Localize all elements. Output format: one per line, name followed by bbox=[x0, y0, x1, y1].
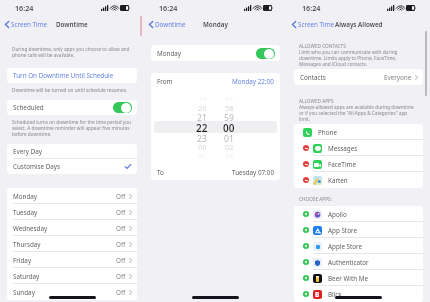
staticText: Off bbox=[116, 240, 126, 249]
staticText: 21 bbox=[197, 112, 207, 121]
staticText: 16:24 bbox=[159, 3, 178, 13]
staticText: Off bbox=[116, 288, 126, 297]
staticText: 16:24 bbox=[15, 3, 34, 13]
button[interactable]: Customise Days bbox=[7, 159, 137, 174]
staticText: 57 bbox=[226, 95, 233, 103]
staticText: Monday bbox=[13, 192, 38, 201]
button[interactable]: Downtime bbox=[149, 20, 186, 29]
staticText: App Store bbox=[328, 226, 357, 235]
staticText: 58 bbox=[225, 103, 234, 112]
staticText: 16:24 bbox=[302, 3, 321, 13]
staticText: 22 bbox=[196, 121, 208, 133]
staticText: Scheduled bbox=[13, 103, 44, 112]
staticText: Authenticator bbox=[328, 258, 369, 267]
staticText: Apple Store bbox=[328, 242, 363, 251]
staticText: Everyone bbox=[384, 73, 412, 82]
button[interactable]: Apple Store bbox=[294, 238, 423, 254]
button[interactable]: From bbox=[151, 73, 280, 89]
button[interactable]: Turn On Downtime Until Schedule bbox=[7, 68, 137, 83]
staticText: Messages bbox=[328, 144, 358, 153]
staticText: 23 bbox=[197, 133, 207, 142]
staticText: Sunday bbox=[13, 288, 35, 297]
staticText: Downtime will be turned on until schedul… bbox=[12, 87, 128, 93]
staticText: Tuesday bbox=[13, 208, 38, 217]
button[interactable]: Thursday bbox=[7, 236, 137, 252]
button[interactable]: To bbox=[151, 164, 280, 180]
button[interactable]: Monday bbox=[151, 45, 280, 61]
staticText: Off bbox=[116, 208, 126, 217]
staticText: Karten bbox=[328, 176, 348, 185]
button[interactable]: Authenticator bbox=[294, 254, 423, 270]
staticText: 20 bbox=[198, 103, 207, 112]
staticText: Beer With Me bbox=[328, 274, 368, 283]
button[interactable]: Toggle bbox=[113, 102, 132, 113]
staticText: FaceTime bbox=[328, 160, 356, 169]
staticText: Off bbox=[116, 256, 126, 265]
button[interactable]: Phone bbox=[294, 124, 423, 140]
staticText: Downtime bbox=[155, 20, 186, 29]
staticText: Phone bbox=[318, 128, 337, 137]
staticText: 19 bbox=[199, 95, 206, 103]
staticText: Saturday bbox=[13, 272, 40, 281]
staticText: Screen Time bbox=[11, 20, 48, 29]
staticText: Scheduled turns on downtime for the time… bbox=[12, 119, 132, 137]
button[interactable]: Toggle bbox=[256, 48, 275, 59]
staticText: Always Allowed bbox=[335, 20, 383, 29]
button[interactable]: Screen Time bbox=[292, 20, 335, 29]
button[interactable]: Apollo bbox=[294, 206, 423, 222]
staticText: CHOOSE APPS: bbox=[299, 196, 332, 202]
staticText: Monday bbox=[203, 20, 228, 29]
button[interactable]: Screen Time bbox=[5, 20, 48, 29]
button[interactable]: Saturday bbox=[7, 268, 137, 284]
button[interactable]: Every Day bbox=[7, 144, 137, 159]
button[interactable]: Beer With Me bbox=[294, 270, 423, 286]
staticText: ALLOWED APPS Always-allowed apps are ava… bbox=[299, 98, 414, 122]
staticText: 01 bbox=[224, 133, 234, 142]
button[interactable]: Friday bbox=[7, 252, 137, 268]
staticText: 03 bbox=[226, 152, 233, 160]
staticText: Tuesday 07:00 bbox=[232, 168, 274, 177]
staticText: 02 bbox=[225, 142, 234, 151]
staticText: Off bbox=[116, 192, 126, 201]
button[interactable]: Messages bbox=[294, 140, 423, 156]
staticText: Thursday bbox=[13, 240, 41, 249]
staticText: 00 bbox=[198, 142, 207, 151]
button[interactable]: Monday bbox=[7, 188, 137, 204]
button[interactable]: Sunday bbox=[7, 284, 137, 300]
staticText: ALLOWED CONTACTS Limit who you can commu… bbox=[299, 43, 398, 67]
staticText: Contacts bbox=[300, 73, 326, 82]
staticText: 01 bbox=[199, 152, 206, 160]
staticText: Friday bbox=[13, 256, 32, 265]
staticText: Apollo bbox=[328, 210, 347, 219]
button[interactable]: Karten bbox=[294, 172, 423, 188]
staticText: From bbox=[157, 77, 173, 86]
staticText: Downtime bbox=[56, 20, 88, 29]
button[interactable]: FaceTime bbox=[294, 156, 423, 172]
staticText: Customise Days bbox=[13, 162, 61, 171]
staticText: 59 bbox=[224, 112, 234, 121]
button[interactable]: Scheduled bbox=[7, 100, 137, 115]
staticText: During downtime, only apps you choose to… bbox=[12, 46, 130, 58]
button[interactable]: Contacts bbox=[294, 69, 423, 85]
staticText: 00 bbox=[223, 121, 235, 133]
staticText: To bbox=[157, 168, 164, 177]
staticText: Off bbox=[116, 272, 126, 281]
staticText: Off bbox=[116, 224, 126, 233]
button[interactable]: Wednesday bbox=[7, 220, 137, 236]
button[interactable]: App Store bbox=[294, 222, 423, 238]
staticText: Wednesday bbox=[13, 224, 48, 233]
staticText: Screen Time bbox=[298, 20, 335, 29]
staticText: Turn On Downtime Until Schedule bbox=[13, 71, 114, 80]
button[interactable]: B bbox=[294, 286, 423, 302]
staticText: Monday bbox=[157, 49, 182, 58]
button[interactable]: Tuesday bbox=[7, 204, 137, 220]
staticText: B bbox=[315, 290, 320, 299]
staticText: Monday 22:00 bbox=[232, 77, 274, 86]
staticText: Every Day bbox=[13, 147, 43, 156]
staticText: Blick bbox=[328, 290, 342, 299]
